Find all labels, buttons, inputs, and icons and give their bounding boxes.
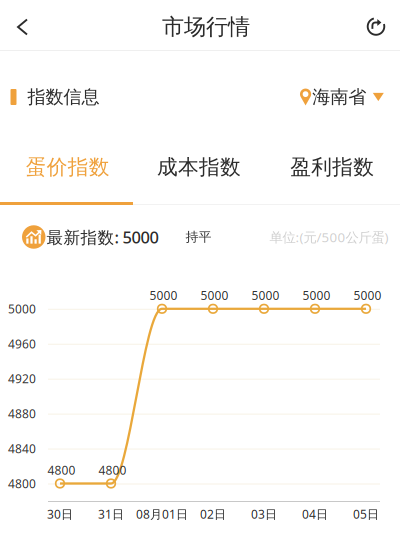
button[interactable]: 返回 (0, 0, 48, 50)
staticText: 4800 (98, 462, 126, 478)
staticText: 05日 (353, 506, 379, 522)
staticText: 5000 (302, 287, 330, 303)
staticText: 31日 (98, 506, 124, 522)
staticText: 单位:(元/500公斤蛋) (269, 228, 388, 246)
button[interactable]: 蛋价指数 (0, 144, 132, 190)
staticText: 市场行情 (162, 13, 250, 41)
staticText: 4880 (8, 405, 36, 422)
staticText: 最新指数: 5000 (46, 226, 158, 248)
staticText: 4960 (8, 336, 36, 352)
staticText: 4800 (8, 475, 36, 492)
button[interactable]: 刷新 (352, 0, 400, 50)
staticText: 指数信息 (27, 86, 99, 108)
staticText: 08月01日 (136, 506, 188, 522)
staticText: 5000 (200, 287, 228, 303)
staticText: 成本指数 (157, 154, 241, 180)
button[interactable]: 海南省 (300, 78, 384, 116)
staticText: 03日 (251, 506, 277, 522)
button[interactable]: 盈利指数 (266, 144, 399, 190)
staticText: 5000 (149, 287, 177, 303)
staticText: 02日 (200, 506, 226, 522)
staticText: 蛋价指数 (26, 154, 110, 180)
staticText: 海南省 (312, 86, 366, 108)
staticText: 持平 (185, 229, 211, 245)
staticText: 4920 (8, 370, 36, 387)
staticText: 5000 (251, 287, 279, 303)
staticText: 5000 (8, 301, 36, 317)
staticText: 4840 (8, 440, 36, 457)
staticText: 30日 (47, 506, 73, 522)
staticText: 盈利指数 (290, 154, 374, 180)
staticText: 4800 (47, 462, 75, 478)
staticText: 04日 (302, 506, 328, 522)
staticText: 5000 (353, 287, 381, 303)
button[interactable]: 成本指数 (132, 144, 266, 190)
